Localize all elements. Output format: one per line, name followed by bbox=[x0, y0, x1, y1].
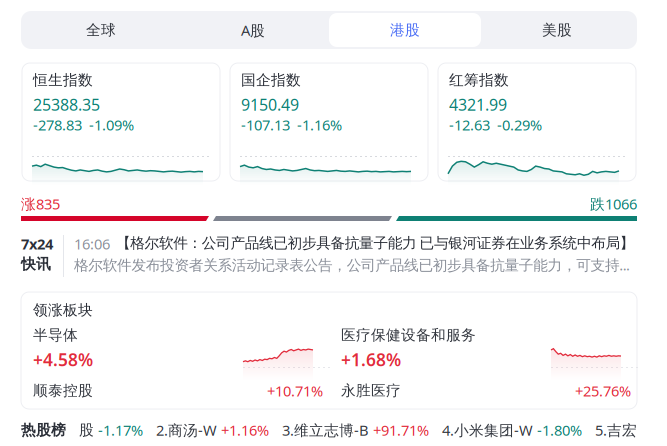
staticText: -12.63 bbox=[449, 115, 490, 134]
staticText: 永胜医疗 bbox=[341, 382, 401, 400]
staticText: A股 bbox=[241, 20, 265, 40]
staticText: 【格尔软件：公司产品线已初步具备抗量子能力 已与银河证券在业务系统中布局】 bbox=[116, 234, 635, 252]
staticText: 顺泰控股 bbox=[33, 382, 93, 400]
staticText: 25388.35 bbox=[33, 94, 100, 115]
button[interactable]: 医疗保健设备和服务 bbox=[341, 326, 649, 420]
staticText: 医疗保健设备和服务 bbox=[341, 326, 476, 344]
staticText: +1.68% bbox=[341, 348, 401, 371]
staticText: 红筹指数 bbox=[449, 71, 509, 89]
button[interactable]: 全球 bbox=[25, 13, 177, 47]
staticText: 股 bbox=[79, 421, 94, 439]
staticText: +1.16% bbox=[217, 420, 269, 440]
staticText: 3.维立志博-B bbox=[282, 420, 369, 440]
button[interactable]: 7x24 bbox=[21, 234, 637, 278]
staticText: 4.小米集团-W bbox=[442, 420, 533, 440]
button[interactable]: 恒生指数 bbox=[22, 63, 220, 181]
staticText: 国企指数 bbox=[241, 71, 301, 89]
staticText: 涨835 bbox=[21, 194, 60, 213]
button[interactable]: 港股 bbox=[329, 13, 481, 47]
staticText: 美股 bbox=[542, 21, 572, 39]
button[interactable]: 红筹指数 bbox=[438, 63, 636, 181]
staticText: 领涨板块 bbox=[33, 301, 93, 319]
staticText: 格尔软件发布投资者关系活动记录表公告，公司产品线已初步具备抗量子能力，可支持..… bbox=[74, 255, 630, 274]
staticText: 快讯 bbox=[21, 255, 51, 273]
staticText: 恒生指数 bbox=[33, 71, 93, 89]
staticText: 16:06 bbox=[74, 234, 110, 253]
button[interactable]: 国企指数 bbox=[230, 63, 428, 181]
staticText: 2.商汤-W bbox=[156, 420, 217, 440]
staticText: -107.13 bbox=[241, 115, 290, 134]
staticText: 港股 bbox=[390, 21, 420, 39]
button[interactable]: 美股 bbox=[481, 13, 633, 47]
staticText: 9150.49 bbox=[241, 94, 299, 115]
staticText: -1.80% bbox=[533, 420, 582, 440]
staticText: 热股榜 bbox=[21, 421, 66, 439]
staticText: +25.76% bbox=[575, 381, 631, 400]
staticText: 全球 bbox=[86, 21, 116, 39]
staticText: +91.71% bbox=[369, 420, 429, 440]
staticText: +4.58% bbox=[33, 348, 93, 371]
staticText: 跌1066 bbox=[590, 194, 637, 213]
staticText: -278.83 bbox=[33, 115, 82, 134]
staticText: 半导体 bbox=[33, 326, 78, 344]
staticText: -0.29% bbox=[497, 115, 542, 134]
button[interactable]: 半导体 bbox=[33, 326, 341, 420]
staticText: -1.09% bbox=[89, 115, 134, 134]
staticText: 4321.99 bbox=[449, 94, 507, 115]
button[interactable]: A股 bbox=[177, 13, 329, 47]
staticText: -1.17% bbox=[94, 420, 143, 440]
staticText: 5.吉宏 bbox=[595, 420, 637, 440]
staticText: +10.71% bbox=[267, 381, 323, 400]
staticText: -1.16% bbox=[297, 115, 342, 134]
staticText: 7x24 bbox=[21, 234, 53, 253]
